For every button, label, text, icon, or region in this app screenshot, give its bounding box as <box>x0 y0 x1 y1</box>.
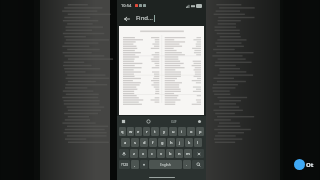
button[interactable]: Backspace <box>193 149 204 158</box>
staticText: g <box>161 140 164 145</box>
button[interactable]: c <box>148 149 156 158</box>
button[interactable]: y <box>160 127 168 136</box>
button[interactable]: w <box>127 127 134 136</box>
button[interactable]: ?123 <box>119 160 130 169</box>
staticText: Ot <box>306 161 314 169</box>
staticText: . <box>186 162 188 167</box>
staticText: i <box>181 129 183 134</box>
staticText: u <box>172 129 175 134</box>
button[interactable]: i <box>178 127 186 136</box>
button[interactable]: x <box>139 149 147 158</box>
button[interactable]: v <box>157 149 165 158</box>
button[interactable]: m <box>184 149 192 158</box>
staticText: l <box>197 140 199 145</box>
staticText: k <box>188 140 191 145</box>
staticText: Find... <box>136 14 153 22</box>
button[interactable]: k <box>185 138 193 147</box>
button[interactable]: p <box>196 127 204 136</box>
button[interactable]: h <box>167 138 175 147</box>
staticText: 10:54 <box>121 3 132 8</box>
staticText: x <box>142 151 145 156</box>
button[interactable]: . <box>183 160 191 169</box>
staticText: b <box>169 151 172 156</box>
button[interactable]: n <box>175 149 183 158</box>
button[interactable]: g <box>158 138 166 147</box>
button[interactable]: Emoji <box>145 118 152 125</box>
button[interactable]: English <box>149 160 182 169</box>
button[interactable]: Search <box>192 160 204 169</box>
button[interactable]: j <box>176 138 184 147</box>
staticText: r <box>146 129 148 134</box>
staticText: m <box>186 151 190 156</box>
staticText: p <box>199 129 202 134</box>
staticText: d <box>143 140 146 145</box>
button[interactable]: t <box>151 127 159 136</box>
staticText: j <box>179 140 181 145</box>
button[interactable]: u <box>169 127 177 136</box>
button[interactable]: Voice input <box>140 160 148 169</box>
button[interactable]: , <box>131 160 139 169</box>
button[interactable]: b <box>166 149 174 158</box>
button[interactable]: Clipboard <box>120 118 127 125</box>
staticText: t <box>154 129 156 134</box>
button[interactable]: q <box>119 127 126 136</box>
button[interactable]: e <box>135 127 142 136</box>
staticText: s <box>134 140 136 145</box>
staticText: z <box>133 151 135 156</box>
staticText: English <box>160 163 171 167</box>
staticText: o <box>190 129 193 134</box>
staticText: ?123 <box>121 163 128 167</box>
staticText: GIF <box>171 119 177 124</box>
button[interactable]: Shift <box>119 149 129 158</box>
staticText: w <box>129 129 133 134</box>
staticText: f <box>152 140 154 145</box>
button[interactable]: Settings <box>196 118 203 125</box>
button[interactable]: Find... <box>136 14 202 22</box>
button[interactable]: l <box>194 138 202 147</box>
button[interactable]: Back <box>121 13 132 24</box>
button[interactable] <box>119 26 204 115</box>
button[interactable]: a <box>121 138 130 147</box>
staticText: n <box>178 151 181 156</box>
staticText: q <box>121 129 124 134</box>
button[interactable]: r <box>143 127 150 136</box>
button[interactable]: o <box>187 127 195 136</box>
staticText: , <box>134 162 136 167</box>
button[interactable]: z <box>130 149 138 158</box>
button[interactable]: d <box>140 138 148 147</box>
staticText: a <box>124 140 127 145</box>
button[interactable]: f <box>149 138 157 147</box>
staticText: y <box>163 129 166 134</box>
staticText: h <box>170 140 173 145</box>
staticText: v <box>160 151 163 156</box>
button[interactable]: s <box>131 138 139 147</box>
staticText: c <box>151 151 153 156</box>
staticText: e <box>137 129 140 134</box>
